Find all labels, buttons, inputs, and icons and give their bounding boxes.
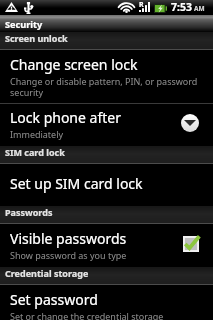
staticText: Change or disable pattern, PIN, or passw… xyxy=(10,75,198,98)
staticText: SIM card lock xyxy=(5,146,65,158)
staticText: Show password as you type xyxy=(10,249,127,261)
staticText: Lock phone after xyxy=(10,108,121,127)
staticText: Credential storage xyxy=(5,267,89,279)
button[interactable]: Set password xyxy=(0,285,213,320)
staticText: Immediately xyxy=(10,128,64,140)
button[interactable]: Visible passwords xyxy=(0,224,213,267)
button[interactable]: Set up SIM card lock xyxy=(0,164,213,206)
staticText: Set password xyxy=(10,290,98,309)
staticText: R xyxy=(139,0,144,10)
other: Visible passwords checkbox xyxy=(183,236,199,252)
staticText: Set up SIM card lock xyxy=(10,174,143,193)
staticText: Screen unlock xyxy=(5,32,68,44)
staticText: 7:53 xyxy=(171,0,192,14)
staticText: Passwords xyxy=(5,206,53,218)
other: Open dropdown xyxy=(181,114,199,132)
button[interactable]: Change screen lock xyxy=(0,50,213,103)
staticText: AM xyxy=(194,4,205,13)
staticText: Set or change the credential storage xyxy=(10,310,164,320)
button[interactable]: Lock phone after xyxy=(0,104,213,146)
staticText: Visible passwords xyxy=(10,229,127,248)
staticText: Security xyxy=(5,18,43,31)
staticText: Change screen lock xyxy=(10,55,138,74)
